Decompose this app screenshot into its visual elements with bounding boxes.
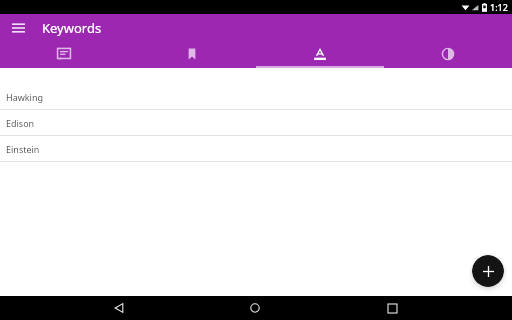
button[interactable]: Bookmarks [128, 42, 256, 68]
staticText: 1:12 [490, 1, 508, 13]
button[interactable]: Edison [0, 110, 512, 136]
button[interactable]: Home [238, 296, 272, 320]
staticText: Hawking [6, 91, 44, 103]
button[interactable]: Recent apps [375, 296, 409, 320]
button[interactable]: Keywords [256, 42, 384, 68]
button[interactable]: Add keyword [472, 255, 504, 287]
button[interactable]: Hawking [0, 84, 512, 110]
staticText: Keywords [42, 19, 102, 37]
button[interactable]: Comments [0, 42, 128, 68]
button[interactable]: Open navigation drawer [6, 16, 30, 40]
staticText: Einstein [6, 143, 40, 155]
button[interactable]: Brightness [384, 42, 512, 68]
staticText: Edison [6, 117, 35, 129]
button[interactable]: Einstein [0, 136, 512, 162]
button[interactable]: Back [102, 296, 136, 320]
